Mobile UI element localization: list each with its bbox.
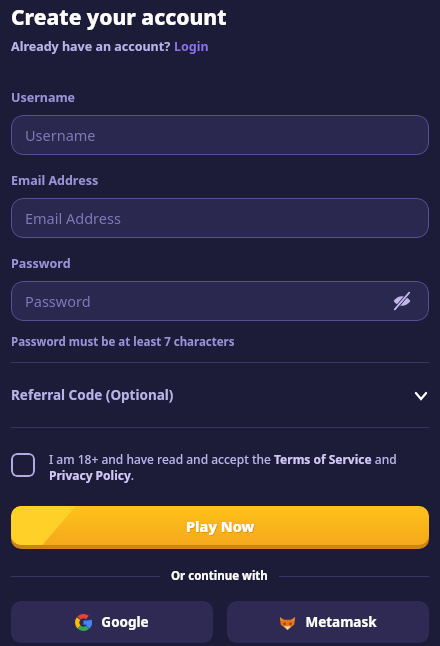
button[interactable]: Referral Code (Optional) <box>11 363 429 427</box>
button[interactable]: Play Now <box>11 506 429 549</box>
staticText: Password must be at least 7 characters <box>11 334 235 350</box>
staticText: Referral Code (Optional) <box>11 386 413 404</box>
staticText: Google <box>101 613 149 631</box>
staticText: Or continue with <box>171 568 268 584</box>
staticText: Username <box>11 89 76 106</box>
button[interactable]: Email Address <box>11 198 429 238</box>
staticText: Play Now <box>186 516 255 536</box>
button[interactable]: Username <box>11 115 429 155</box>
staticText: Password <box>11 255 71 272</box>
staticText: Username <box>25 125 415 145</box>
button[interactable]: Google <box>11 601 213 643</box>
staticText: Login <box>174 38 209 55</box>
button[interactable]: Metamask <box>227 601 429 643</box>
staticText: Email Address <box>11 172 99 189</box>
button[interactable]: Password <box>11 281 429 321</box>
button[interactable]: Show password <box>389 288 415 314</box>
staticText: Password <box>25 291 389 311</box>
staticText: I am 18+ and have read and accept the Te… <box>49 451 429 484</box>
button[interactable]: Login <box>174 38 209 55</box>
staticText: Already have an account? <box>11 38 174 55</box>
staticText: Play Now <box>187 517 256 537</box>
staticText: Metamask <box>305 613 377 631</box>
staticText: Create your account <box>11 3 227 32</box>
staticText: Email Address <box>25 208 415 228</box>
button[interactable]: I am 18+ and have read and accept the Te… <box>11 451 429 484</box>
